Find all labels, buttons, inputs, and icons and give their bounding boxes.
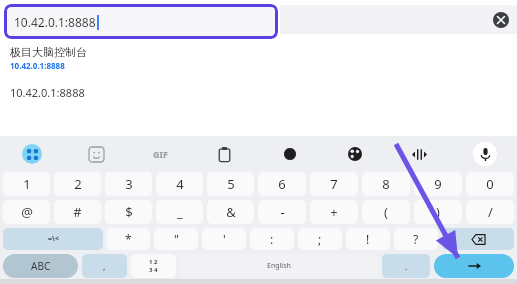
button[interactable]: 10.42.0.1:8888 bbox=[10, 85, 85, 100]
button[interactable]: =\< bbox=[3, 228, 103, 250]
staticText: 5 bbox=[227, 175, 235, 193]
staticText: * bbox=[125, 231, 132, 247]
button[interactable]: 2 bbox=[54, 172, 101, 196]
button[interactable]: English bbox=[180, 254, 378, 278]
staticText: 10.42.0.1:8888 bbox=[14, 14, 96, 30]
staticText: ) bbox=[436, 203, 440, 221]
button[interactable]: Backspace bbox=[442, 228, 514, 250]
staticText: $ bbox=[125, 203, 133, 221]
staticText: 0 bbox=[486, 175, 494, 193]
staticText: & bbox=[226, 203, 236, 221]
staticText: + bbox=[330, 203, 338, 221]
button[interactable]: Clipboard bbox=[192, 136, 257, 172]
button[interactable]: @ bbox=[3, 200, 50, 224]
button[interactable]: 7 bbox=[310, 172, 358, 196]
button[interactable]: Voice input bbox=[452, 136, 517, 172]
staticText: English bbox=[267, 261, 291, 271]
staticText: # bbox=[73, 203, 82, 221]
staticText: ? bbox=[413, 231, 419, 247]
button[interactable]: + bbox=[310, 200, 358, 224]
button[interactable]: 极目大脑控制台 bbox=[10, 45, 87, 71]
button[interactable]: ( bbox=[362, 200, 410, 224]
staticText: 10.42.0.1:8888 bbox=[10, 85, 85, 100]
staticText: 4 bbox=[176, 175, 184, 193]
button[interactable]: # bbox=[54, 200, 101, 224]
staticText: . bbox=[405, 260, 408, 272]
staticText: 9 bbox=[434, 175, 442, 193]
button[interactable]: 3 bbox=[105, 172, 152, 196]
button[interactable]: $ bbox=[105, 200, 152, 224]
button[interactable]: * bbox=[107, 228, 150, 250]
staticText: ' bbox=[223, 231, 226, 247]
button[interactable]: Themes bbox=[322, 136, 387, 172]
button[interactable]: ; bbox=[298, 228, 342, 250]
staticText: 7 bbox=[330, 175, 338, 193]
staticText: 10.42.0.1:8888 bbox=[10, 60, 65, 71]
button[interactable]: Settings bbox=[257, 136, 322, 172]
button[interactable]: 8 bbox=[362, 172, 410, 196]
button[interactable]: 9 bbox=[414, 172, 462, 196]
button[interactable]: ABC bbox=[3, 254, 78, 278]
button[interactable]: ' bbox=[202, 228, 246, 250]
staticText: 2 bbox=[74, 175, 82, 193]
staticText: " bbox=[174, 231, 179, 247]
staticText: _ bbox=[177, 203, 183, 221]
button[interactable]: _ bbox=[156, 200, 203, 224]
button[interactable]: ! bbox=[346, 228, 390, 250]
staticText: ABC bbox=[31, 259, 51, 273]
button[interactable]: Stickers bbox=[64, 136, 128, 172]
button[interactable]: 0 bbox=[466, 172, 514, 196]
button[interactable]: , bbox=[82, 254, 127, 278]
button[interactable]: Enter bbox=[434, 254, 514, 278]
staticText: 极目大脑控制台 bbox=[10, 45, 87, 59]
button[interactable]: 6 bbox=[258, 172, 306, 196]
button[interactable]: . bbox=[382, 254, 430, 278]
staticText: 3 4 bbox=[149, 266, 158, 274]
button[interactable]: " bbox=[154, 228, 198, 250]
button[interactable]: - bbox=[258, 200, 306, 224]
button[interactable]: 1 bbox=[3, 172, 50, 196]
button[interactable]: 5 bbox=[207, 172, 254, 196]
button[interactable]: Numbers bbox=[131, 254, 176, 278]
staticText: ( bbox=[384, 203, 388, 221]
button[interactable]: & bbox=[207, 200, 254, 224]
staticText: 6 bbox=[278, 175, 286, 193]
button[interactable]: Apps bbox=[0, 136, 64, 172]
button[interactable]: ) bbox=[414, 200, 462, 224]
staticText: ; bbox=[318, 231, 322, 247]
staticText: 1 bbox=[23, 175, 31, 193]
staticText: 8 bbox=[382, 175, 390, 193]
button[interactable]: 4 bbox=[156, 172, 203, 196]
staticText: 1 2 bbox=[149, 258, 158, 266]
button[interactable]: ? bbox=[394, 228, 438, 250]
staticText: / bbox=[488, 203, 493, 221]
button[interactable]: Clear text bbox=[493, 12, 509, 28]
button[interactable]: GIF bbox=[128, 136, 192, 172]
staticText: @ bbox=[21, 203, 33, 221]
staticText: =\< bbox=[48, 234, 59, 244]
button[interactable]: 10.42.0.1:8888 bbox=[4, 4, 278, 39]
staticText: : bbox=[270, 231, 274, 247]
staticText: ! bbox=[366, 231, 370, 247]
staticText: 3 bbox=[125, 175, 133, 193]
button[interactable]: Text editing bbox=[387, 136, 452, 172]
button[interactable]: / bbox=[466, 200, 514, 224]
button[interactable]: : bbox=[250, 228, 294, 250]
staticText: - bbox=[280, 203, 285, 221]
staticText: GIF bbox=[153, 148, 168, 160]
staticText: , bbox=[103, 260, 106, 272]
